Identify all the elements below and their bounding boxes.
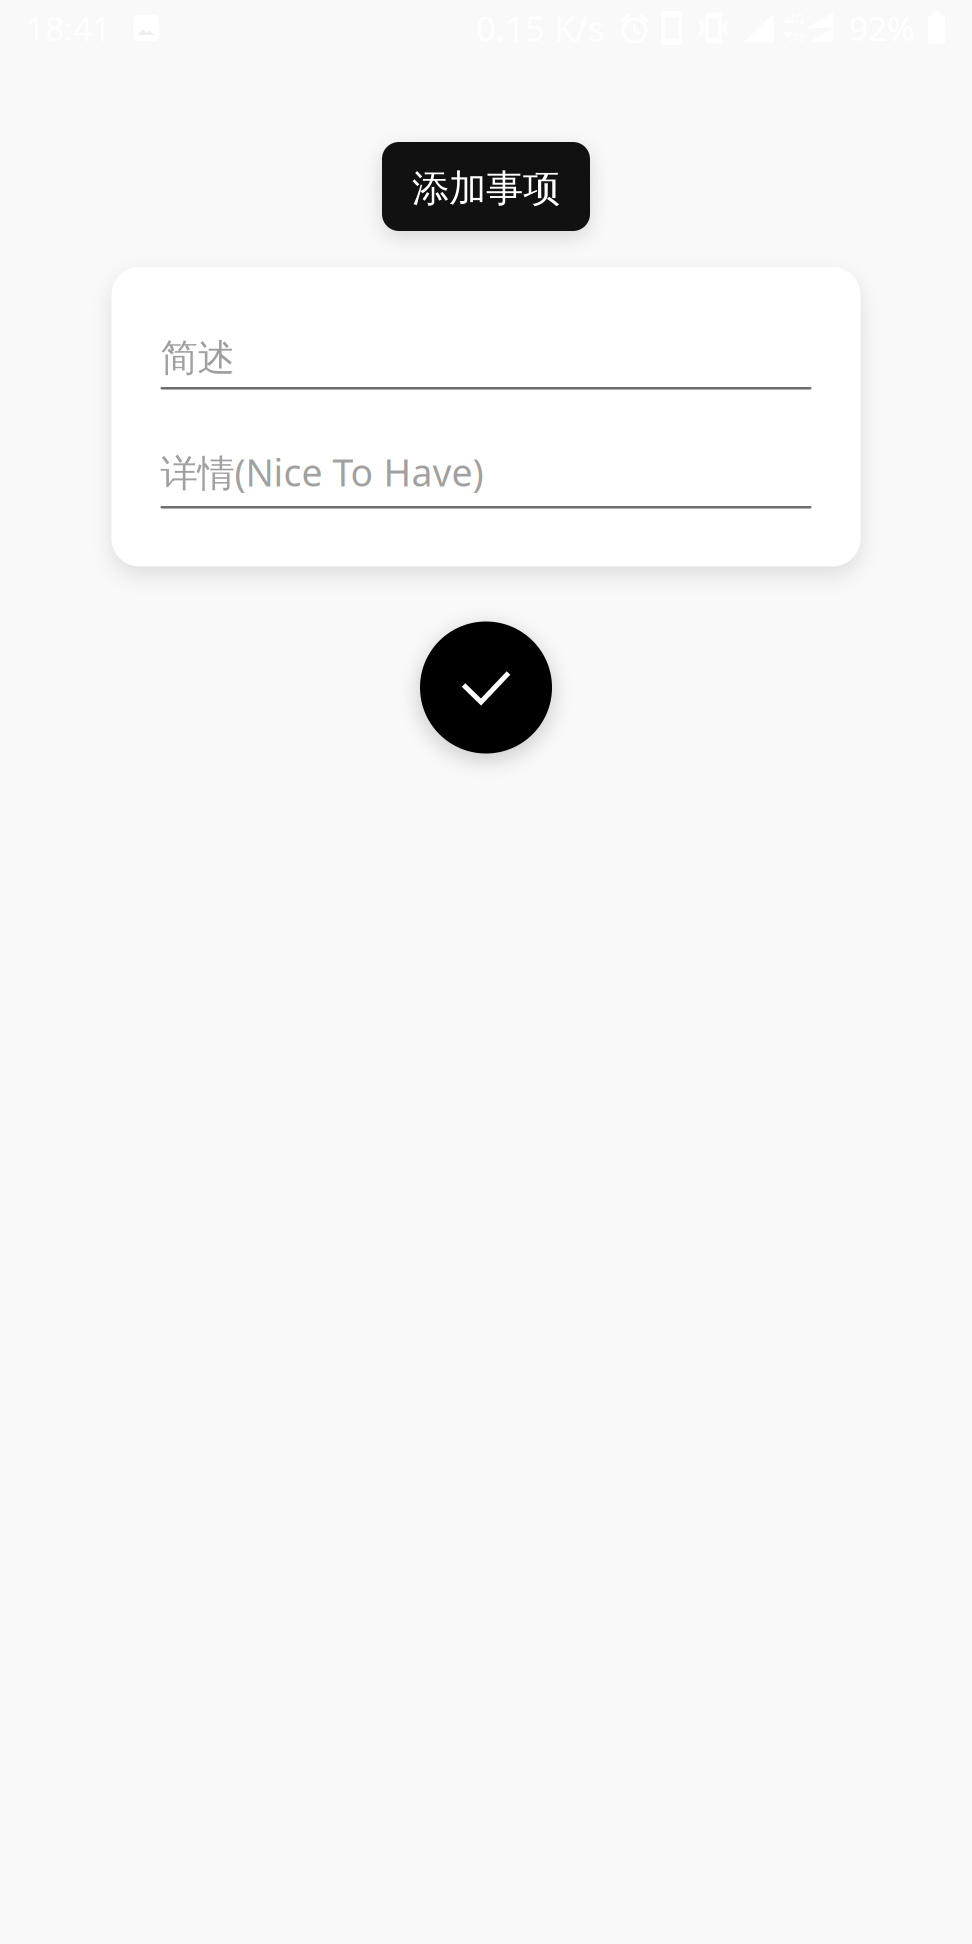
button[interactable]: 简述	[160, 336, 811, 389]
button[interactable]: 添加事项	[382, 142, 590, 231]
staticText: 简述	[160, 335, 234, 381]
button[interactable]: Confirm	[420, 621, 552, 753]
staticText: 添加事项	[412, 166, 560, 211]
staticText: 详情(Nice To Have)	[160, 447, 483, 497]
button[interactable]: 详情(Nice To Have)	[160, 450, 811, 508]
